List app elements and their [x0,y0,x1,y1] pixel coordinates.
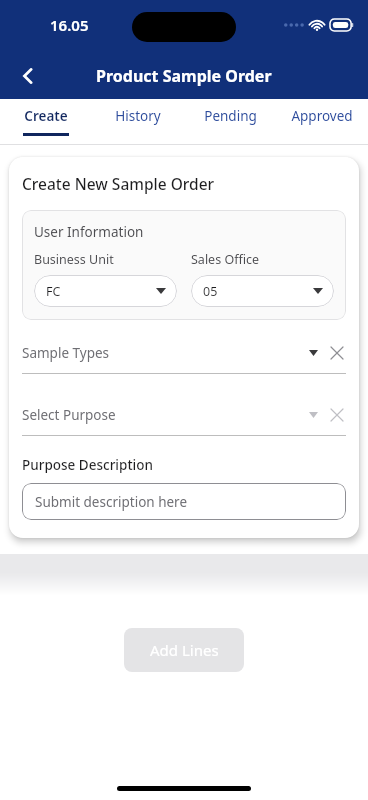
button[interactable]: Back [8,56,48,96]
staticText: Sales Office [191,251,260,268]
staticText: Approved [291,107,353,125]
staticText: Purpose Description [22,456,153,474]
staticText: FC [46,283,61,300]
button[interactable]: Approved [276,99,368,144]
staticText: History [115,107,161,125]
staticText: Pending [204,107,257,125]
staticText: Add Lines [150,640,219,660]
button[interactable]: FC [34,275,177,307]
button[interactable]: Select Purpose [22,404,346,436]
staticText: 16.05 [50,15,89,35]
staticText: Product Sample Order [96,65,272,87]
button[interactable]: History [92,99,184,144]
staticText: Sample Types [22,344,309,362]
button[interactable]: Add Lines [124,628,244,672]
button[interactable]: Submit description here [22,483,346,520]
button[interactable]: 05 [191,275,334,307]
staticText: Submit description here [35,493,188,511]
staticText: Select Purpose [22,406,309,424]
button[interactable]: Clear Select Purpose [328,406,346,424]
staticText: Business Unit [34,251,114,268]
button[interactable]: Pending [184,99,276,144]
staticText: 05 [203,283,218,300]
button[interactable]: Sample Types [22,342,346,374]
staticText: User Information [34,223,144,241]
button[interactable]: Clear Sample Types [328,344,346,362]
staticText: Create [24,107,68,125]
button[interactable]: Create [0,99,92,144]
staticText: Create New Sample Order [22,173,215,194]
